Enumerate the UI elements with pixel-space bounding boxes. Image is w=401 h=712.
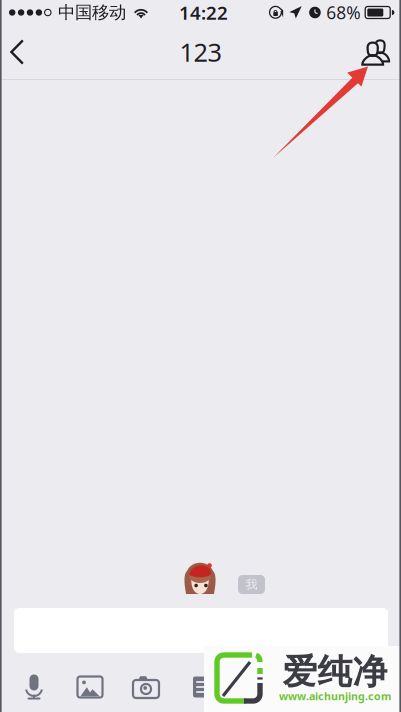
button[interactable]: Photos xyxy=(62,666,118,708)
staticText: 68% xyxy=(326,1,360,24)
staticText: 我 xyxy=(245,577,257,592)
staticText: www.aichunjing.com xyxy=(279,689,391,703)
button[interactable]: Back xyxy=(0,29,34,75)
staticText: 14:22 xyxy=(179,0,228,25)
staticText: 爱纯净 xyxy=(282,651,387,693)
staticText: 123 xyxy=(179,35,221,69)
button[interactable]: Files xyxy=(174,666,230,708)
staticText: 中国移动 xyxy=(58,2,126,23)
button[interactable]: Voice message xyxy=(6,666,62,708)
button[interactable]: Camera xyxy=(118,666,174,708)
button[interactable]: Contacts xyxy=(356,29,396,75)
